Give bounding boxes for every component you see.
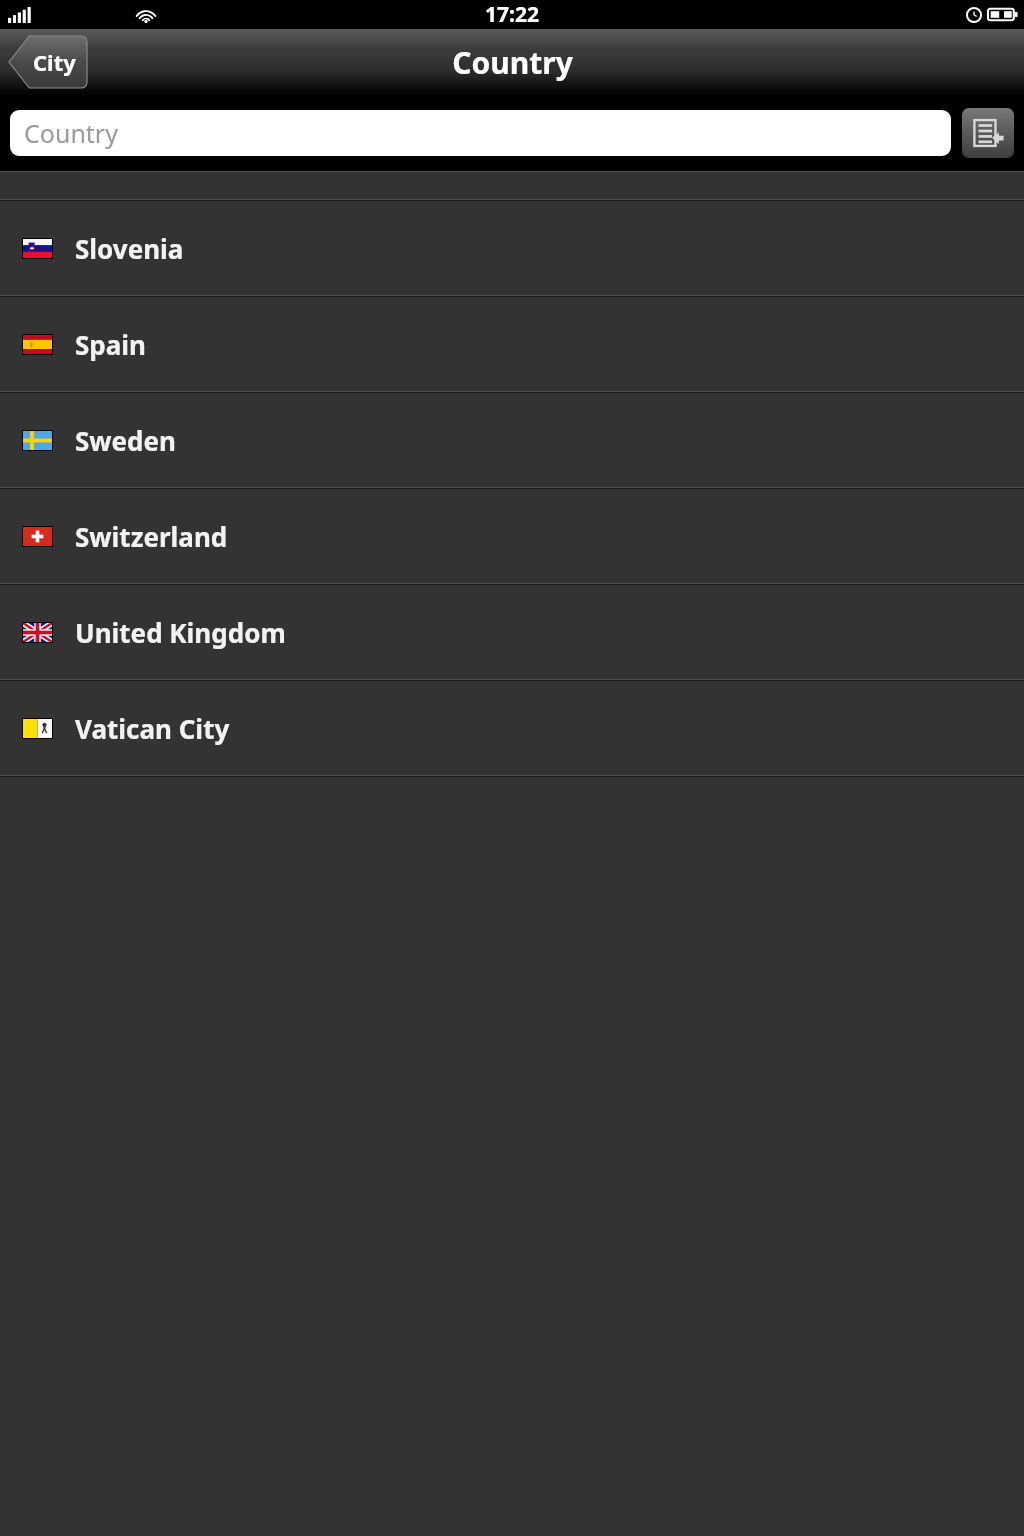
button[interactable]: Slovenia [0,201,1024,297]
staticText: City [33,47,76,77]
button[interactable]: Switzerland [0,489,1024,585]
button[interactable]: Sweden [0,393,1024,489]
button[interactable]: United Kingdom [0,585,1024,681]
staticText: Vatican City [75,711,230,746]
button[interactable]: City [9,36,87,88]
staticText: Spain [75,327,147,362]
staticText: Slovenia [75,231,184,266]
button[interactable]: Vatican City [0,681,1024,777]
staticText: United Kingdom [75,615,286,650]
button[interactable]: Show country list [962,108,1014,158]
staticText: 17:22 [485,0,539,29]
button[interactable]: Country [10,110,951,156]
button[interactable]: Spain [0,297,1024,393]
staticText: Switzerland [75,519,228,554]
staticText: Country [452,42,573,83]
staticText: Country [24,116,118,150]
staticText: Sweden [75,423,176,458]
